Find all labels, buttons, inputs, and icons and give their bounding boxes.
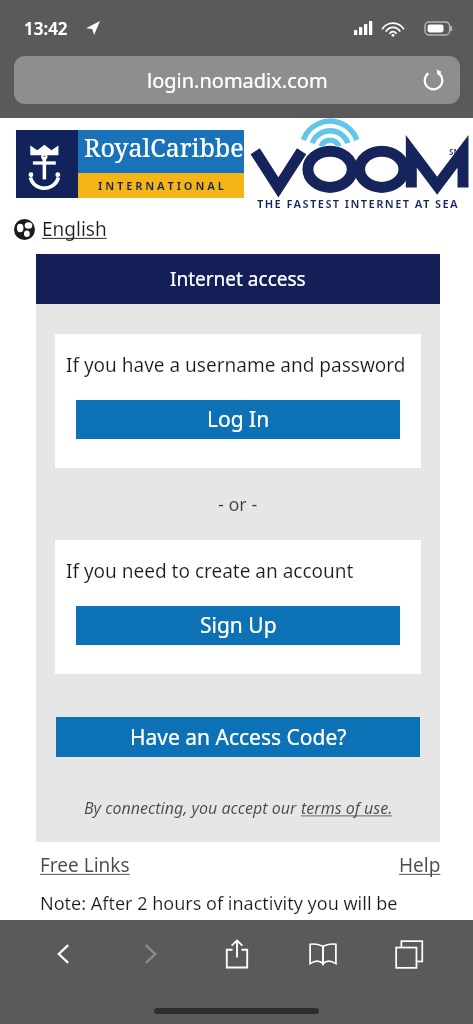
staticText: - or - <box>218 492 258 517</box>
staticText: If you need to create an account <box>66 558 354 584</box>
button[interactable]: Sign Up <box>76 606 400 645</box>
staticText: Note: After 2 hours of inactivity you wi… <box>40 891 398 916</box>
staticText: Internet access <box>170 266 306 292</box>
button[interactable]: Reload <box>416 63 450 97</box>
staticText: SM <box>449 146 461 157</box>
staticText: If you have a username and password <box>66 352 406 378</box>
staticText: RoyalCaribbean <box>84 130 244 173</box>
staticText: Have an Access Code? <box>130 723 347 752</box>
button[interactable]: Back <box>42 932 86 976</box>
staticText: 13:42 <box>24 17 68 40</box>
button[interactable]: Bookmarks <box>301 932 345 976</box>
button[interactable]: login.nomadix.com <box>14 56 460 104</box>
staticText: English <box>42 216 107 242</box>
button[interactable]: Log In <box>76 400 400 439</box>
staticText: login.nomadix.com <box>147 67 328 94</box>
staticText: THE FASTEST INTERNET AT SEA <box>257 196 459 211</box>
button[interactable]: Share <box>215 932 259 976</box>
staticText: Log In <box>207 405 270 434</box>
button[interactable]: terms of use. <box>301 797 393 819</box>
button[interactable]: Free Links <box>40 852 130 878</box>
button[interactable]: Tabs <box>387 932 431 976</box>
button[interactable]: Have an Access Code? <box>56 717 420 757</box>
staticText: By connecting, you accept our <box>84 797 301 819</box>
button[interactable]: Help <box>399 852 441 878</box>
staticText: Sign Up <box>200 611 277 640</box>
staticText: I N T E R N A T I O N A L <box>98 178 224 193</box>
button[interactable]: Forward <box>128 932 172 976</box>
button[interactable]: English <box>14 216 107 242</box>
